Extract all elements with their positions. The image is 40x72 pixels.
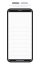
button[interactable]: List item (0, 40, 40, 44)
button[interactable]: List item (0, 48, 40, 52)
button[interactable]: List item (0, 28, 40, 32)
button[interactable]: List item (0, 36, 40, 40)
button[interactable] (21, 2, 28, 4)
button[interactable]: List item (0, 44, 40, 48)
button[interactable] (12, 2, 19, 4)
button[interactable]: List item (0, 52, 40, 56)
button[interactable]: List item (0, 32, 40, 36)
